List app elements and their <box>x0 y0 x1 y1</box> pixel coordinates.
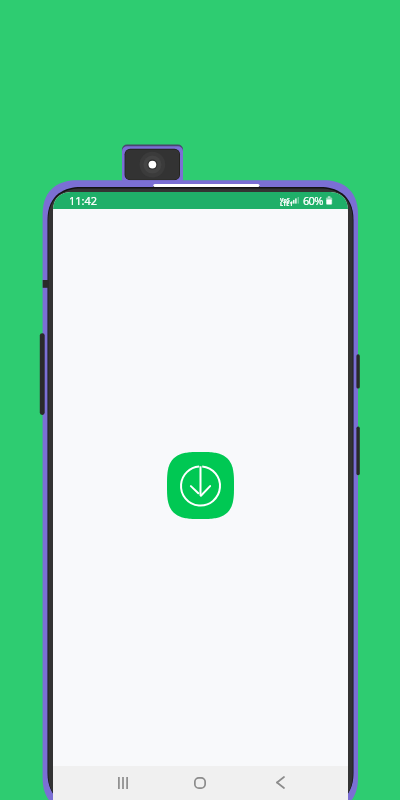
button[interactable]: Back <box>258 766 302 799</box>
staticText: VoS <box>280 196 290 203</box>
button[interactable]: Recent apps <box>101 766 145 799</box>
button[interactable]: Home <box>178 766 222 799</box>
staticText: LTE1 <box>280 200 293 208</box>
staticText: 60% <box>303 193 323 208</box>
staticText: 11:42 <box>69 193 98 208</box>
button[interactable]: App icon <box>167 452 234 519</box>
